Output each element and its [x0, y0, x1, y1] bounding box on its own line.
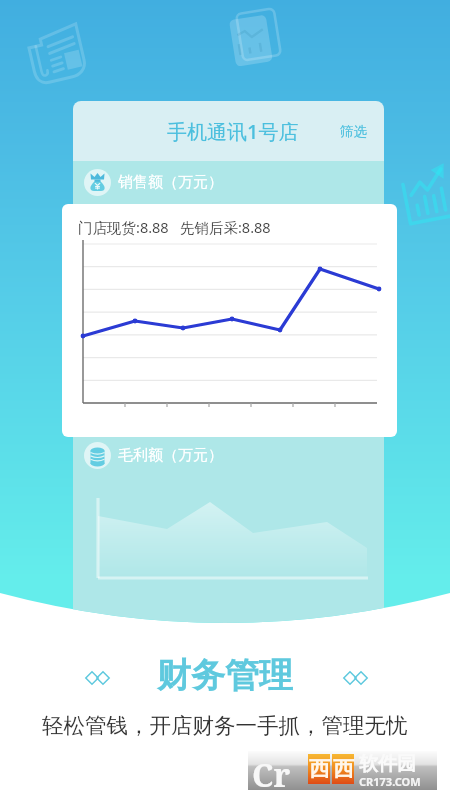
staticText: Cr [252, 753, 291, 792]
staticText: 轻松管钱，开店财务一手抓，管理无忧 [42, 712, 408, 739]
staticText: 财务管理 [157, 654, 293, 697]
staticText: 西 [333, 756, 354, 782]
staticText: 西 [309, 756, 330, 782]
staticText: 毛利额（万元） [118, 446, 223, 465]
button[interactable]: 筛选 [340, 123, 367, 140]
staticText: 软件园 [359, 752, 416, 776]
staticText: 门店现货:8.88 先销后采:8.88 [78, 217, 271, 237]
button[interactable]: 毛利额（万元） [84, 442, 223, 469]
button[interactable]: 销售额（万元） [84, 169, 223, 196]
staticText: 销售额（万元） [118, 173, 223, 192]
staticText: CR173.COM [359, 774, 421, 789]
button[interactable]: 手机通讯1号店 [167, 118, 299, 145]
